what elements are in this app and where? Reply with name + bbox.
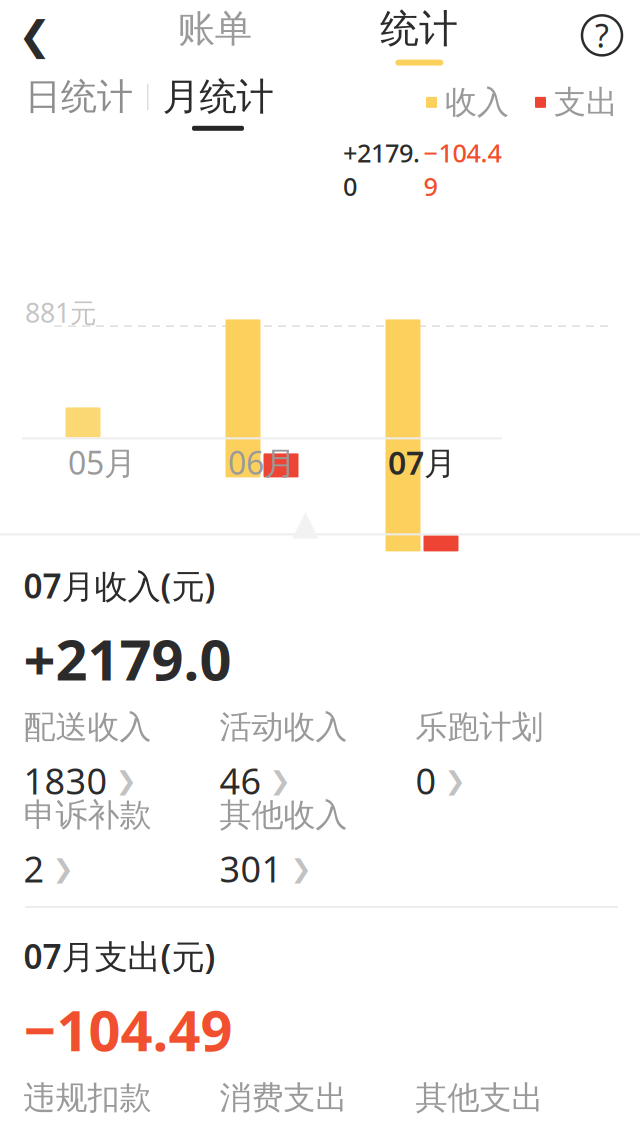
staticText: 申诉补款	[23, 795, 151, 835]
button[interactable]: 活动收入	[219, 712, 415, 800]
button[interactable]: Back	[0, 2, 70, 68]
staticText: 2	[23, 845, 44, 892]
button[interactable]: 申诉补款	[23, 800, 219, 888]
staticText: 其他收入	[219, 795, 347, 835]
staticText: 违规扣款	[23, 1078, 151, 1117]
staticText: ❮	[18, 13, 52, 58]
button[interactable]: 消费支出	[219, 1083, 415, 1138]
staticText: 0	[415, 757, 436, 804]
staticText: ▲	[292, 503, 319, 542]
staticText: 日统计	[25, 75, 133, 119]
staticText: ❯	[115, 766, 136, 795]
staticText: 配送收入	[23, 707, 151, 747]
staticText: 06月	[228, 441, 296, 484]
staticText: −104.49	[423, 136, 501, 203]
staticText: +2179.0	[23, 622, 231, 696]
button[interactable]: 乐跑计划	[415, 712, 611, 800]
button[interactable]: 其他支出	[415, 1083, 611, 1138]
staticText: 07月	[388, 441, 456, 484]
staticText: −104.49	[23, 992, 232, 1067]
staticText: 支出	[554, 83, 618, 122]
button[interactable]: 配送收入	[23, 712, 219, 800]
staticText: 月统计	[162, 74, 273, 120]
staticText: ?	[595, 14, 609, 57]
staticText: 07月收入(元)	[23, 563, 215, 608]
staticText: 881元	[25, 295, 97, 330]
staticText: 05月	[68, 441, 136, 484]
staticText: 乐跑计划	[415, 707, 543, 747]
staticText: 统计	[380, 5, 458, 53]
button[interactable]: 违规扣款	[23, 1083, 219, 1138]
staticText: 收入	[445, 83, 509, 122]
staticText: 46	[219, 757, 261, 804]
staticText: ❯	[290, 854, 311, 883]
button[interactable]: Help	[564, 2, 640, 68]
staticText: 活动收入	[219, 707, 347, 747]
staticText: ❯	[444, 766, 465, 795]
staticText: 07月支出(元)	[23, 934, 215, 978]
staticText: 1830	[23, 757, 107, 804]
staticText: 其他支出	[415, 1078, 543, 1117]
staticText: ❯	[52, 854, 73, 883]
staticText: ❯	[269, 766, 290, 795]
button[interactable]: 账单	[155, 2, 275, 68]
button[interactable]: 其他收入	[219, 800, 415, 888]
staticText: 消费支出	[219, 1078, 347, 1117]
staticText: 账单	[178, 6, 252, 52]
button[interactable]: 日统计	[25, 75, 133, 130]
button[interactable]: 月统计	[162, 74, 273, 131]
button[interactable]: 统计	[359, 2, 479, 68]
staticText: 301	[219, 845, 282, 892]
staticText: +2179.0	[343, 136, 420, 203]
